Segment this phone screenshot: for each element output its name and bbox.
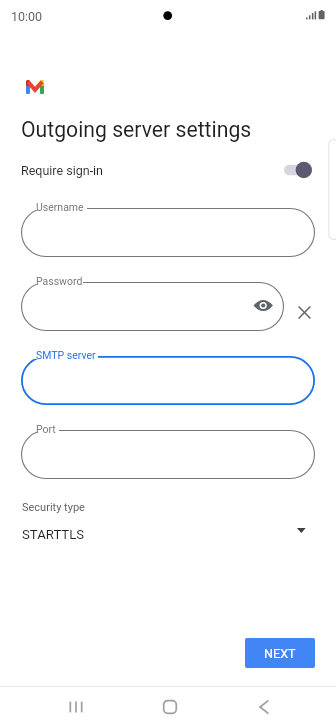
staticText: Security type <box>22 501 85 514</box>
button[interactable]: Clear <box>294 302 315 323</box>
button[interactable]: Security type <box>0 492 336 548</box>
staticText: STARTTLS <box>22 527 85 542</box>
staticText: Require sign-in <box>21 163 104 178</box>
button[interactable]: Back <box>248 691 280 723</box>
button[interactable]: Password <box>21 282 284 331</box>
staticText: SMTP server <box>36 349 96 361</box>
staticText: Username <box>36 201 84 213</box>
button[interactable]: Recent apps <box>60 691 92 723</box>
button[interactable]: Require sign-in <box>284 161 312 179</box>
staticText: Password <box>36 275 83 287</box>
button[interactable]: SMTP server <box>21 356 315 405</box>
button[interactable]: Username <box>21 208 315 257</box>
staticText: Outgoing server settings <box>21 117 252 142</box>
button[interactable]: Require sign-in <box>0 150 336 190</box>
staticText: NEXT <box>264 646 296 661</box>
staticText: 10:00 <box>11 9 43 24</box>
button[interactable]: Port <box>21 430 315 479</box>
button[interactable]: NEXT <box>245 638 315 668</box>
button[interactable]: Home <box>154 691 186 723</box>
staticText: Port <box>36 423 56 435</box>
